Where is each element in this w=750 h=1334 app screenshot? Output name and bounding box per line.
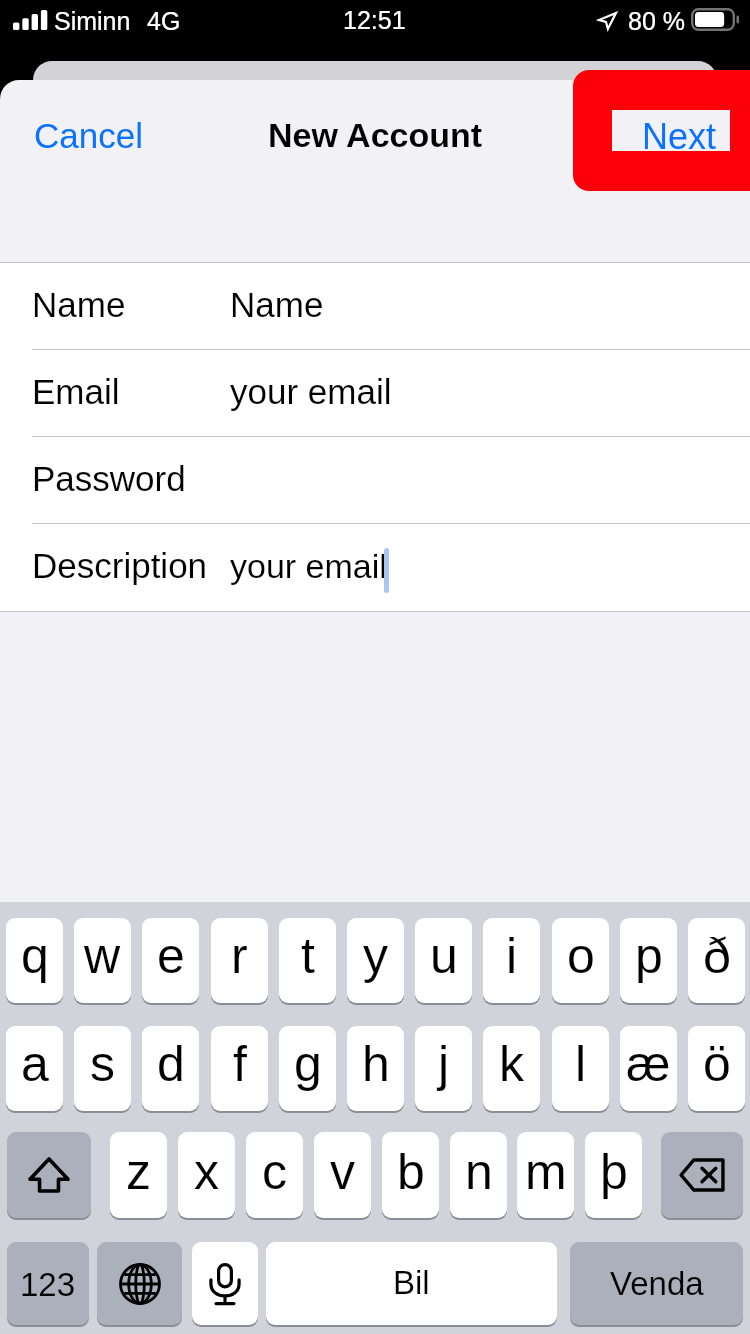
- staticText: ö: [703, 1036, 731, 1092]
- button[interactable]: t: [279, 918, 336, 1003]
- button[interactable]: u: [415, 918, 472, 1003]
- button[interactable]: Cancel: [20, 80, 150, 182]
- staticText: your email: [230, 547, 387, 585]
- staticText: p: [635, 928, 663, 984]
- button[interactable]: 123: [7, 1242, 89, 1325]
- button[interactable]: Venda: [570, 1242, 743, 1325]
- button[interactable]: Shift: [7, 1132, 91, 1218]
- staticText: j: [438, 1036, 450, 1092]
- button[interactable]: ö: [688, 1026, 745, 1111]
- button[interactable]: c: [246, 1132, 303, 1218]
- staticText: y: [363, 928, 388, 984]
- staticText: Siminn: [54, 7, 131, 35]
- button[interactable]: g: [279, 1026, 336, 1111]
- staticText: b: [397, 1144, 425, 1200]
- staticText: þ: [600, 1144, 628, 1200]
- staticText: t: [301, 928, 315, 984]
- staticText: c: [262, 1144, 287, 1200]
- staticText: ð: [703, 928, 731, 984]
- button[interactable]: Bil: [266, 1242, 557, 1325]
- button[interactable]: l: [552, 1026, 609, 1111]
- staticText: 12:51: [343, 6, 406, 34]
- button[interactable]: Dictation: [192, 1242, 258, 1325]
- button[interactable]: þ: [585, 1132, 642, 1218]
- staticText: i: [506, 928, 518, 984]
- staticText: 4G: [147, 7, 181, 35]
- staticText: u: [430, 928, 458, 984]
- button[interactable]: q: [6, 918, 63, 1003]
- staticText: r: [231, 928, 248, 984]
- button[interactable]: z: [110, 1132, 167, 1218]
- staticText: l: [575, 1036, 587, 1092]
- button[interactable]: Next: [612, 110, 730, 151]
- staticText: o: [567, 928, 595, 984]
- staticText: v: [330, 1144, 355, 1200]
- button[interactable]: v: [314, 1132, 371, 1218]
- staticText: a: [21, 1036, 49, 1092]
- staticText: Bil: [393, 1264, 430, 1301]
- staticText: Next: [642, 116, 717, 156]
- staticText: f: [233, 1036, 247, 1092]
- button[interactable]: r: [211, 918, 268, 1003]
- staticText: your email: [230, 372, 392, 411]
- button[interactable]: h: [347, 1026, 404, 1111]
- staticText: New Account: [268, 116, 483, 154]
- staticText: q: [21, 928, 49, 984]
- button[interactable]: a: [6, 1026, 63, 1111]
- staticText: 80 %: [628, 7, 685, 35]
- staticText: Email: [32, 372, 120, 411]
- button[interactable]: b: [382, 1132, 439, 1218]
- staticText: s: [90, 1036, 115, 1092]
- button[interactable]: Name: [0, 263, 750, 350]
- button[interactable]: m: [517, 1132, 574, 1218]
- button[interactable]: æ: [620, 1026, 677, 1111]
- button[interactable]: Backspace: [661, 1132, 743, 1218]
- button[interactable]: p: [620, 918, 677, 1003]
- staticText: Description: [32, 546, 208, 585]
- staticText: Name: [32, 285, 126, 324]
- button[interactable]: Password: [0, 437, 750, 524]
- button[interactable]: w: [74, 918, 131, 1003]
- button[interactable]: Email: [0, 350, 750, 437]
- button[interactable]: Description: [0, 524, 750, 611]
- staticText: Name: [230, 285, 324, 324]
- staticText: h: [362, 1036, 390, 1092]
- button[interactable]: f: [211, 1026, 268, 1111]
- staticText: Venda: [610, 1265, 704, 1302]
- button[interactable]: k: [483, 1026, 540, 1111]
- button[interactable]: y: [347, 918, 404, 1003]
- staticText: æ: [626, 1036, 671, 1092]
- staticText: x: [194, 1144, 219, 1200]
- staticText: e: [157, 928, 185, 984]
- button[interactable]: e: [142, 918, 199, 1003]
- staticText: z: [126, 1144, 151, 1200]
- button[interactable]: ð: [688, 918, 745, 1003]
- staticText: m: [525, 1144, 567, 1200]
- button[interactable]: o: [552, 918, 609, 1003]
- staticText: g: [294, 1036, 322, 1092]
- button[interactable]: d: [142, 1026, 199, 1111]
- staticText: k: [499, 1036, 524, 1092]
- staticText: w: [84, 928, 121, 984]
- staticText: 123: [20, 1266, 76, 1303]
- button[interactable]: i: [483, 918, 540, 1003]
- button[interactable]: Switch keyboard: [97, 1242, 182, 1325]
- button[interactable]: j: [415, 1026, 472, 1111]
- button[interactable]: s: [74, 1026, 131, 1111]
- button[interactable]: x: [178, 1132, 235, 1218]
- staticText: n: [465, 1144, 493, 1200]
- staticText: Cancel: [34, 116, 143, 155]
- staticText: Password: [32, 459, 186, 498]
- button[interactable]: n: [450, 1132, 507, 1218]
- staticText: d: [157, 1036, 185, 1092]
